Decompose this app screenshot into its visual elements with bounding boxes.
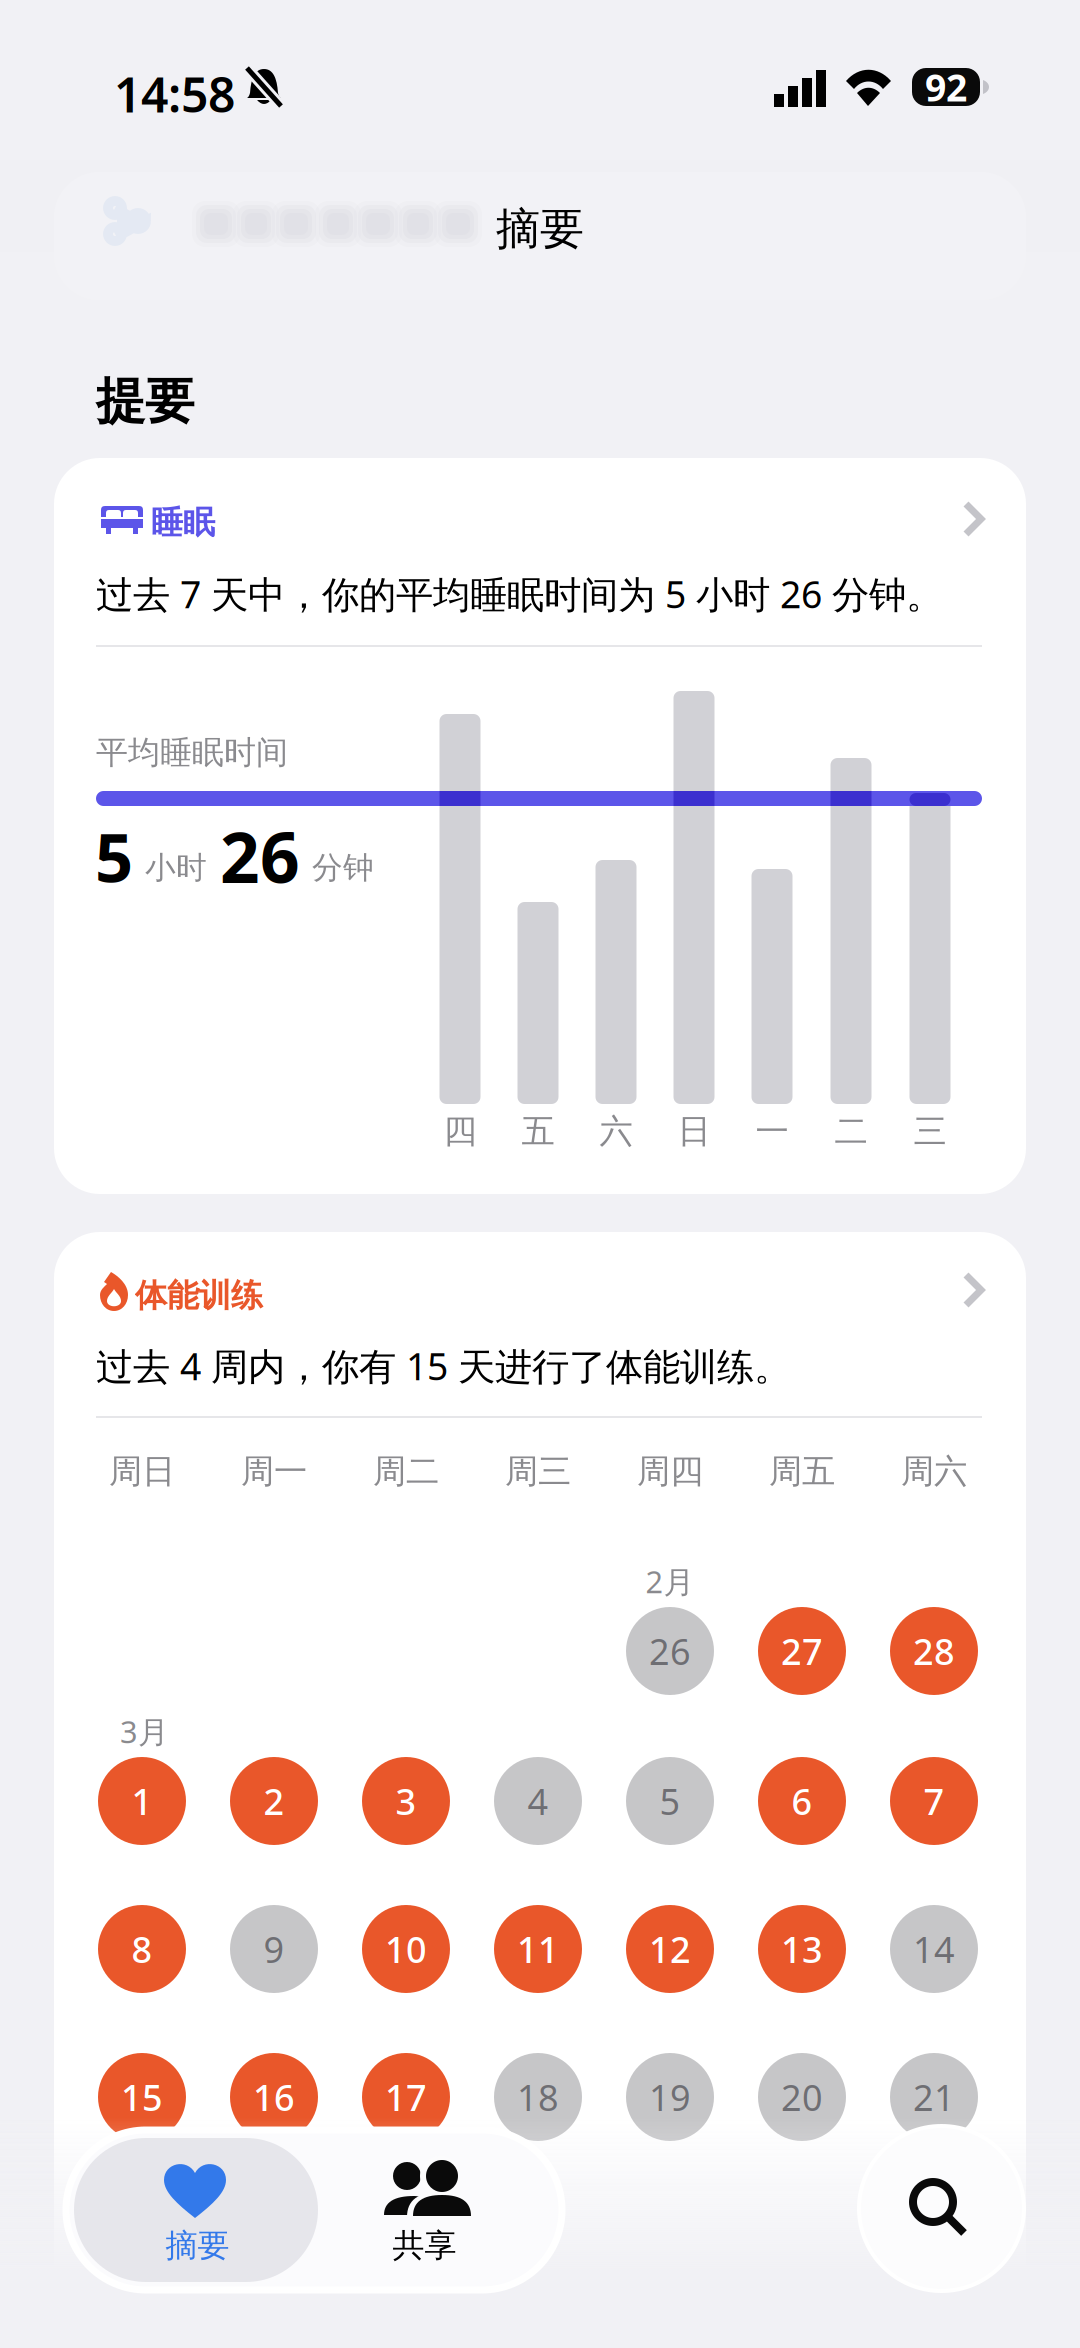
button[interactable]: 摘要 [0,0,1080,2348]
staticText: 16 [253,2073,295,2121]
staticText: 三 [913,1111,946,1152]
staticText: 平均睡眠时间 [96,733,288,772]
staticText: 5 [659,1777,680,1825]
staticText: 11 [517,1925,559,1973]
staticText: 过去 4 周内，你有 15 天进行了体能训练。 [96,1341,791,1391]
staticText: 睡眠 [151,503,215,542]
staticText: 过去 7 天中，你的平均睡眠时间为 5 小时 26 分钟。 [96,569,943,619]
staticText: 摘要 [165,2226,229,2265]
staticText: 五 [521,1111,554,1152]
staticText: 周一 [241,1451,307,1492]
staticText: 周五 [769,1451,835,1492]
staticText: 26 [220,810,300,902]
staticText: 1 [131,1777,152,1825]
staticText: 6 [791,1777,812,1825]
staticText: 2 [263,1777,284,1825]
staticText: 周六 [901,1451,967,1492]
staticText: 27 [781,1627,823,1675]
staticText: 二 [834,1111,867,1152]
staticText: 共享 [392,2226,456,2265]
staticText: 26 [649,1627,691,1675]
staticText: 4 [527,1777,548,1825]
staticText: 一 [755,1111,788,1152]
staticText: 周三 [505,1451,571,1492]
staticText: 14 [913,1925,955,1973]
staticText: 92 [925,62,967,112]
staticText: 六 [599,1111,632,1152]
button[interactable]: 体能训练 [0,0,1080,2348]
staticText: 小时 [145,849,207,887]
staticText: 7 [923,1777,944,1825]
button[interactable]: 共享 [0,0,1080,2348]
staticText: 9 [263,1925,284,1973]
staticText: 13 [781,1925,823,1973]
staticText: 15 [121,2073,163,2121]
staticText: 5 [95,812,133,900]
staticText: 21 [913,2073,955,2121]
staticText: 12 [649,1925,691,1973]
staticText: 18 [517,2073,559,2121]
staticText: 17 [385,2073,427,2121]
staticText: 提要 [96,371,194,432]
staticText: 2月 [645,1561,694,1602]
staticText: 四 [443,1111,476,1152]
staticText: 19 [649,2073,691,2121]
button[interactable]: 睡眠 [0,0,1080,2348]
button[interactable]: 搜索 [0,0,1080,2348]
staticText: 8 [131,1925,152,1973]
staticText: 周日 [109,1451,175,1492]
staticText: 14:58 [114,62,235,126]
staticText: 周二 [373,1451,439,1492]
staticText: 10 [385,1925,427,1973]
staticText: 3月 [120,1711,169,1752]
staticText: 周四 [637,1451,703,1492]
staticText: 3 [395,1777,416,1825]
staticText: 28 [913,1627,955,1675]
staticText: 日 [677,1111,710,1152]
staticText: 分钟 [312,849,374,887]
staticText: 摘要 [496,202,584,256]
staticText: 体能训练 [135,1276,263,1315]
staticText: 20 [781,2073,823,2121]
